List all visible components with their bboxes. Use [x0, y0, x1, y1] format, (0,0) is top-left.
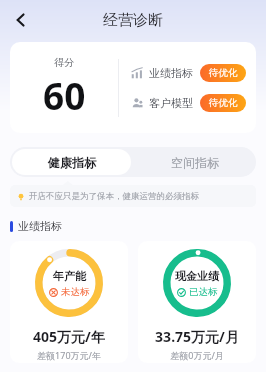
staticText: 得分: [54, 56, 74, 69]
button[interactable]: 业绩指标: [131, 64, 246, 82]
button[interactable]: 空间指标: [133, 147, 256, 177]
button[interactable]: 健康指标: [12, 149, 131, 175]
staticText: 60: [43, 70, 86, 120]
staticText: 业绩指标: [149, 66, 193, 80]
staticText: 开店不应只是为了保本，健康运营的必须指标: [29, 191, 199, 202]
staticText: 405万元/年: [33, 327, 105, 346]
button[interactable]: Back: [6, 5, 36, 35]
button[interactable]: 现金业绩: [138, 241, 256, 363]
staticText: 已达标: [189, 286, 218, 298]
staticText: 经营诊断: [103, 11, 163, 30]
staticText: 33.75万元/月: [155, 327, 239, 346]
staticText: 未达标: [61, 286, 90, 298]
staticText: 客户模型: [149, 96, 193, 110]
staticText: 业绩指标: [18, 219, 62, 233]
button[interactable]: 年产能: [10, 241, 128, 363]
staticText: 差额170万元/年: [37, 349, 101, 361]
staticText: 待优化: [209, 97, 238, 109]
staticText: 空间指标: [171, 155, 219, 170]
staticText: 待优化: [209, 67, 238, 79]
button[interactable]: 客户模型: [131, 94, 246, 112]
staticText: 健康指标: [48, 155, 96, 170]
staticText: 差额0万元/月: [170, 349, 224, 361]
staticText: 现金业绩: [175, 269, 219, 283]
staticText: 年产能: [53, 269, 86, 283]
